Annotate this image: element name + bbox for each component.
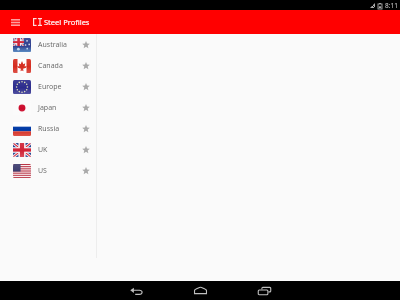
button[interactable]: Open navigation drawer	[6, 10, 24, 34]
staticText: 8:11	[385, 1, 398, 10]
staticText: UK	[38, 145, 48, 155]
button[interactable]: Canada	[0, 55, 96, 76]
button[interactable]: Back	[116, 281, 156, 300]
button[interactable]: Japan	[0, 97, 96, 118]
staticText: Australia	[38, 40, 67, 50]
button[interactable]: Home	[180, 281, 220, 300]
button[interactable]: US	[0, 160, 96, 181]
button[interactable]: Recent apps	[244, 281, 284, 300]
button[interactable]: Favourite Australia	[77, 36, 94, 53]
button[interactable]: UK	[0, 139, 96, 160]
staticText: Steel Profiles	[44, 17, 90, 27]
button[interactable]: Favourite Europe	[77, 78, 94, 95]
staticText: Europe	[38, 82, 62, 92]
staticText: Canada	[38, 61, 63, 71]
staticText: US	[38, 166, 47, 176]
button[interactable]: Australia	[0, 34, 96, 55]
button[interactable]: Russia	[0, 118, 96, 139]
button[interactable]: Favourite UK	[77, 141, 94, 158]
button[interactable]: Favourite Russia	[77, 120, 94, 137]
staticText: Japan	[38, 103, 57, 113]
button[interactable]: Favourite Japan	[77, 99, 94, 116]
staticText: Russia	[38, 124, 60, 134]
button[interactable]: Europe	[0, 76, 96, 97]
button[interactable]: Favourite Canada	[77, 57, 94, 74]
button[interactable]: Favourite US	[77, 162, 94, 179]
